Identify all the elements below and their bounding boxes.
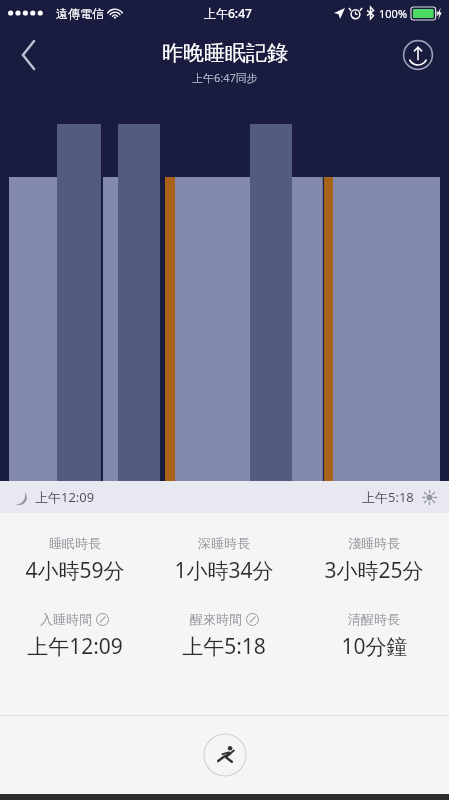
staticText: 上午12:09: [35, 488, 95, 506]
staticText: 10分鐘: [341, 632, 408, 661]
staticText: 清醒時長: [348, 611, 400, 627]
staticText: 淺睡時長: [348, 535, 400, 551]
staticText: 上午6:47: [204, 5, 252, 21]
staticText: 醒來時間: [190, 611, 242, 627]
button[interactable]: Share: [395, 32, 441, 78]
button[interactable]: Activity: [203, 733, 247, 777]
button[interactable]: 清醒時長: [299, 611, 449, 661]
staticText: 4小時59分: [25, 556, 125, 585]
staticText: 遠傳電信: [56, 6, 104, 21]
staticText: 昨晚睡眠記錄: [162, 40, 288, 66]
staticText: 入睡時間: [40, 611, 92, 627]
staticText: 深睡時長: [198, 535, 250, 551]
button[interactable]: 淺睡時長: [299, 535, 449, 585]
staticText: 100%: [379, 6, 408, 21]
button[interactable]: Back: [4, 30, 54, 80]
staticText: 上午5:18: [182, 632, 266, 661]
staticText: 1小時34分: [174, 556, 274, 585]
staticText: 睡眠時長: [49, 535, 101, 551]
button[interactable]: 睡眠時長: [0, 535, 149, 585]
staticText: 3小時25分: [324, 556, 424, 585]
staticText: 上午6:47同步: [192, 70, 258, 85]
button[interactable]: 入睡時間: [0, 611, 149, 661]
button[interactable]: 醒來時間: [149, 611, 299, 661]
staticText: 上午5:18: [362, 488, 414, 506]
staticText: 上午12:09: [27, 632, 123, 661]
button[interactable]: 深睡時長: [149, 535, 299, 585]
